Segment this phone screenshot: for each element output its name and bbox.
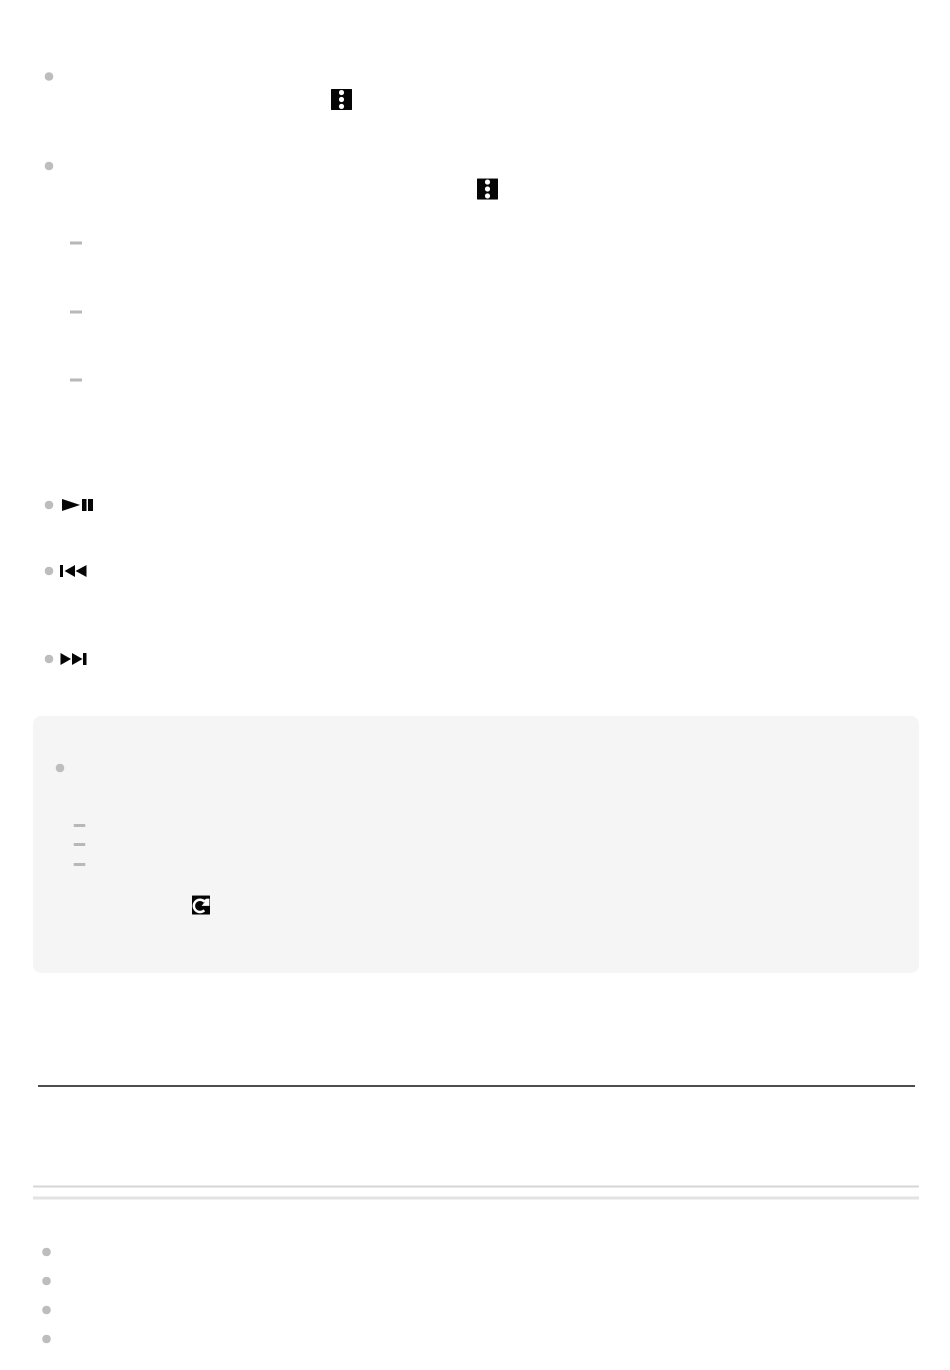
button[interactable]: Reload [192,895,210,914]
button[interactable]: Related topic 2 [42,1277,51,1285]
button[interactable]: Next track [60,653,86,665]
button[interactable]: Previous track [60,565,86,577]
button[interactable]: More options [477,178,498,199]
button[interactable]: Related topic 4 [42,1335,51,1343]
button[interactable]: Related topic 3 [42,1306,51,1314]
button[interactable]: More options [331,89,352,110]
button[interactable]: Related topic 1 [42,1248,51,1256]
button[interactable]: Play or pause [62,499,93,511]
